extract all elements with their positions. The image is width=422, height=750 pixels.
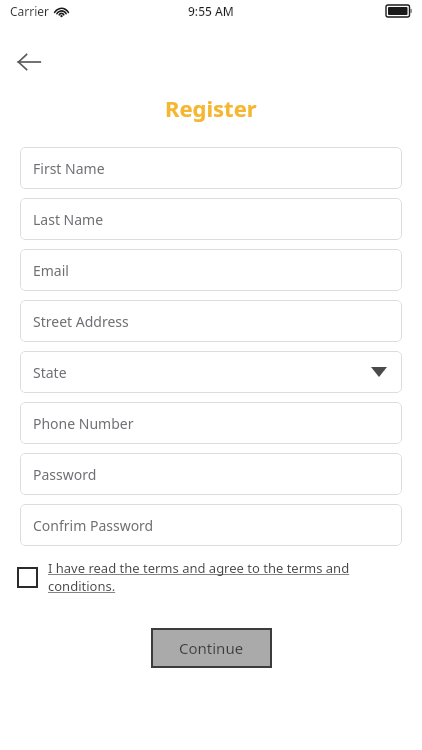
- other: Select state: [369, 362, 389, 382]
- staticText: Email: [33, 261, 69, 280]
- staticText: Confrim Password: [33, 516, 154, 535]
- button[interactable]: State: [20, 351, 402, 393]
- button[interactable]: First Name: [20, 147, 402, 189]
- staticText: Last Name: [33, 210, 104, 229]
- button[interactable]: Last Name: [20, 198, 402, 240]
- button[interactable]: Phone Number: [20, 402, 402, 444]
- staticText: Carrier: [10, 3, 50, 19]
- button[interactable]: Back: [10, 45, 48, 79]
- button[interactable]: Password: [20, 453, 402, 495]
- button[interactable]: Confrim Password: [20, 504, 402, 546]
- button[interactable]: Email: [20, 249, 402, 291]
- staticText: Register: [165, 93, 257, 123]
- button[interactable]: Street Address: [20, 300, 402, 342]
- button[interactable]: Continue: [151, 628, 272, 668]
- staticText: First Name: [33, 159, 105, 178]
- staticText: Phone Number: [33, 414, 134, 433]
- staticText: Street Address: [33, 312, 129, 331]
- staticText: I have read the terms and agree to the t…: [48, 559, 402, 595]
- staticText: 9:55 AM: [188, 3, 234, 19]
- staticText: State: [33, 363, 67, 382]
- staticText: Continue: [179, 638, 244, 658]
- button[interactable]: I have read the terms and agree to the t…: [18, 559, 402, 595]
- staticText: Password: [33, 465, 97, 484]
